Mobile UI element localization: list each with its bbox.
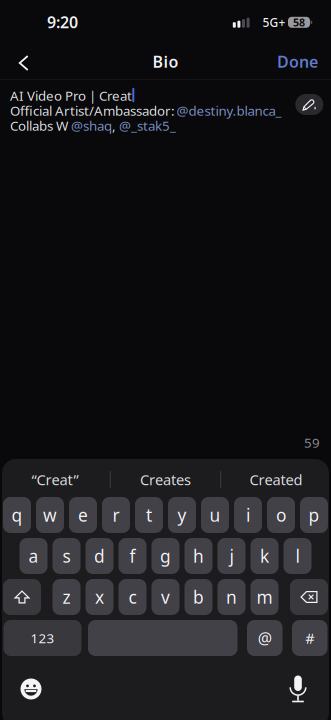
button[interactable]: Done (277, 51, 318, 72)
staticText: u (209, 503, 220, 526)
button[interactable]: 123 (3, 620, 81, 656)
button[interactable]: Dictate (289, 675, 307, 702)
staticText: y (177, 503, 186, 526)
staticText: b (193, 585, 204, 608)
staticText: “Creat” (31, 470, 78, 489)
staticText: l (295, 544, 299, 567)
staticText: 9:20 (47, 11, 78, 33)
button[interactable]: t (135, 497, 163, 533)
staticText: m (256, 585, 272, 608)
button[interactable]: c (118, 579, 146, 615)
button[interactable]: r (102, 497, 130, 533)
staticText: p (308, 503, 319, 526)
button[interactable]: u (201, 497, 229, 533)
staticText: q (11, 503, 22, 526)
button[interactable]: k (250, 538, 278, 574)
button[interactable]: w (36, 497, 64, 533)
button[interactable]: Shift (3, 579, 41, 615)
button[interactable]: Rewrite bio with AI (295, 94, 323, 115)
button[interactable]: Back (9, 48, 39, 78)
staticText: n (226, 585, 237, 608)
button[interactable]: “Creat” (2, 463, 108, 495)
button[interactable]: z (52, 579, 80, 615)
staticText: d (94, 544, 105, 567)
staticText: Official Artist/Ambassador: (10, 102, 175, 119)
button[interactable]: f (118, 538, 146, 574)
staticText: t (146, 503, 152, 526)
staticText: z (62, 585, 70, 608)
staticText: 5G+ (262, 14, 285, 30)
staticText: j (229, 544, 233, 567)
button[interactable]: e (69, 497, 97, 533)
button[interactable]: Emoji (20, 678, 41, 699)
staticText: s (62, 544, 70, 567)
button[interactable]: @ (247, 620, 282, 656)
staticText: Done (277, 51, 318, 72)
staticText: h (193, 544, 204, 567)
button[interactable]: l (283, 538, 311, 574)
staticText: f (129, 544, 135, 567)
staticText: e (78, 503, 88, 526)
staticText: Creates (140, 470, 191, 489)
button[interactable]: m (250, 579, 278, 615)
staticText: 59 (304, 434, 320, 451)
staticText: @shaq (71, 117, 112, 134)
button[interactable]: y (168, 497, 196, 533)
staticText: o (276, 503, 286, 526)
staticText: i (246, 503, 250, 526)
button[interactable]: Created (223, 463, 329, 495)
button[interactable]: x (85, 579, 113, 615)
staticText: c (128, 585, 136, 608)
button[interactable]: o (267, 497, 295, 533)
button[interactable]: Creates (112, 463, 218, 495)
staticText: @_stak5_ (119, 117, 176, 134)
staticText: @ (258, 627, 272, 649)
button[interactable]: d (85, 538, 113, 574)
staticText: Collabs W (10, 117, 68, 134)
button[interactable]: # (292, 620, 327, 656)
button[interactable]: v (151, 579, 179, 615)
staticText: w (43, 503, 57, 526)
staticText: 58 (293, 15, 305, 29)
button[interactable]: n (217, 579, 245, 615)
button[interactable]: b (184, 579, 212, 615)
staticText: r (112, 503, 119, 526)
staticText: a (28, 544, 38, 567)
staticText: g (160, 544, 171, 567)
button[interactable]: g (151, 538, 179, 574)
staticText: k (260, 544, 269, 567)
staticText: v (161, 585, 170, 608)
button[interactable]: i (234, 497, 262, 533)
button[interactable]: Space (88, 620, 237, 656)
button[interactable]: Delete (290, 579, 328, 615)
staticText: x (95, 585, 104, 608)
button[interactable]: q (3, 497, 31, 533)
button[interactable]: h (184, 538, 212, 574)
staticText: Bio (152, 51, 178, 72)
button[interactable]: a (19, 538, 47, 574)
staticText: Created (249, 470, 302, 489)
staticText: # (305, 628, 314, 648)
button[interactable]: p (300, 497, 328, 533)
button[interactable]: j (217, 538, 245, 574)
staticText: @destiny.blanca_ (176, 102, 281, 119)
button[interactable]: s (52, 538, 80, 574)
staticText: 123 (30, 629, 54, 647)
staticText: AI Video Pro | Creat (10, 87, 132, 104)
staticText: , (112, 117, 116, 134)
